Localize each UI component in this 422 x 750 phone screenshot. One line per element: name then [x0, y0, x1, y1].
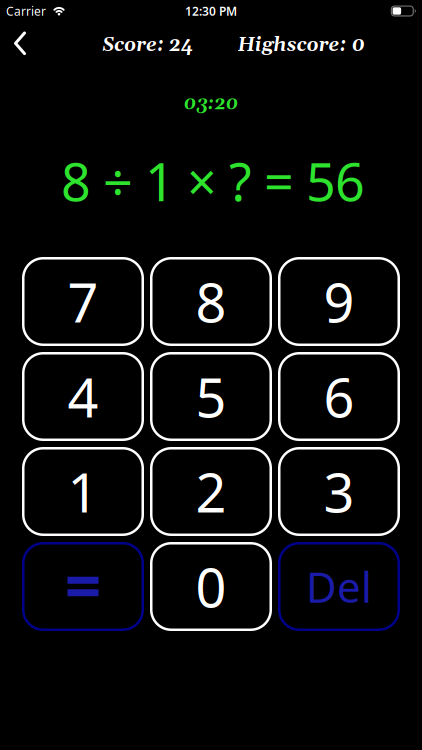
staticText: 5 [195, 361, 226, 432]
button[interactable]: 7 [22, 257, 144, 346]
staticText: Highscore: 0 [237, 33, 364, 57]
button[interactable]: 5 [150, 352, 272, 441]
staticText: 8 ÷ 1 × ? = 56 [61, 146, 365, 216]
staticText: 7 [67, 266, 98, 337]
staticText: 9 [323, 266, 354, 337]
button[interactable]: 0 [150, 542, 272, 631]
button[interactable]: Equals [22, 542, 144, 631]
staticText: 3 [323, 456, 354, 527]
staticText: Score: 24 [102, 33, 193, 57]
staticText: 8 [195, 266, 226, 337]
staticText: 6 [323, 361, 354, 432]
button[interactable]: 6 [278, 352, 400, 441]
staticText: 03:20 [183, 93, 238, 115]
button[interactable]: Back [14, 33, 26, 54]
staticText: 4 [67, 361, 98, 432]
button[interactable]: 8 [150, 257, 272, 346]
staticText: Carrier [6, 3, 46, 19]
staticText: 12:30 PM [185, 3, 237, 19]
button[interactable]: 9 [278, 257, 400, 346]
staticText: 0 [195, 551, 226, 622]
button[interactable]: 1 [22, 447, 144, 536]
button[interactable]: 3 [278, 447, 400, 536]
button[interactable]: 4 [22, 352, 144, 441]
staticText: 2 [195, 456, 226, 527]
staticText: Del [306, 559, 372, 614]
button[interactable]: Del [278, 542, 400, 631]
staticText: 1 [67, 456, 98, 527]
button[interactable]: 2 [150, 447, 272, 536]
